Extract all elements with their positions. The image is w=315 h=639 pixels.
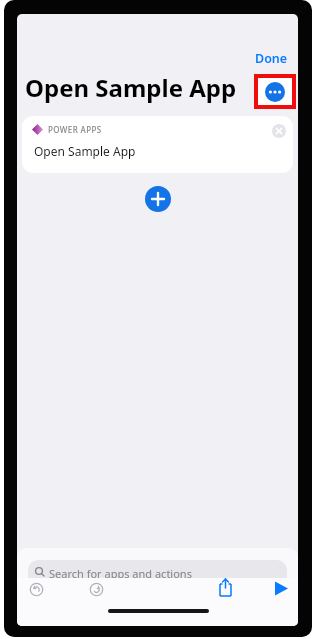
staticText: POWER APPS	[48, 124, 102, 135]
button[interactable]: POWER APPS	[22, 116, 293, 173]
staticText: Open Sample App	[34, 143, 136, 159]
staticText: Search for apps and actions	[49, 566, 192, 581]
button[interactable]	[29, 582, 44, 597]
button[interactable]	[218, 578, 233, 597]
button[interactable]	[145, 186, 171, 212]
button[interactable]	[89, 582, 104, 597]
button[interactable]: Search for apps and actions	[28, 560, 287, 592]
button[interactable]	[272, 124, 286, 138]
button[interactable]	[274, 581, 289, 596]
button[interactable]	[265, 82, 285, 102]
button[interactable]: Done	[255, 50, 288, 67]
staticText: Open Sample App	[25, 71, 237, 104]
